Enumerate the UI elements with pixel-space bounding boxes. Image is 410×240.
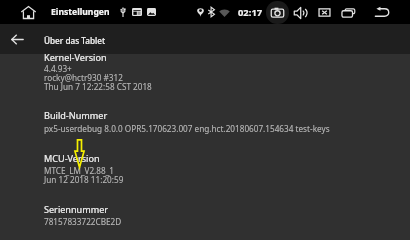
button[interactable]: [0, 105, 410, 134]
button[interactable]: [0, 47, 410, 94]
button[interactable]: Navigate up: [4, 26, 30, 52]
button[interactable]: [0, 199, 410, 228]
staticText: MTCE_LM_V2.88_1 Jun 12 2018 11:20:59: [44, 165, 410, 186]
staticText: px5-userdebug 8.0.0 OPR5.170623.007 eng.…: [44, 123, 410, 134]
staticText: 4.4.93+ rocky@hctr930 #312 Thu Jun 7 12:…: [44, 63, 410, 93]
staticText: Über das Tablet: [44, 35, 106, 46]
button[interactable]: [0, 148, 410, 185]
button[interactable]: Screenshot: [266, 1, 289, 24]
staticText: Kernel-Version: [44, 51, 107, 63]
staticText: MCU-Version: [44, 152, 100, 164]
button[interactable]: Back: [371, 1, 394, 24]
button[interactable]: Recent apps: [337, 1, 360, 24]
staticText: 78157833722CBE2D: [44, 216, 410, 227]
staticText: 02:17: [238, 6, 263, 19]
button[interactable]: Close: [313, 1, 336, 24]
staticText: Build-Nummer: [44, 109, 108, 121]
button[interactable]: Volume: [289, 1, 312, 24]
staticText: Seriennummer: [44, 203, 109, 215]
staticText: Einstellungen: [51, 6, 110, 18]
button[interactable]: Home: [16, 0, 40, 24]
